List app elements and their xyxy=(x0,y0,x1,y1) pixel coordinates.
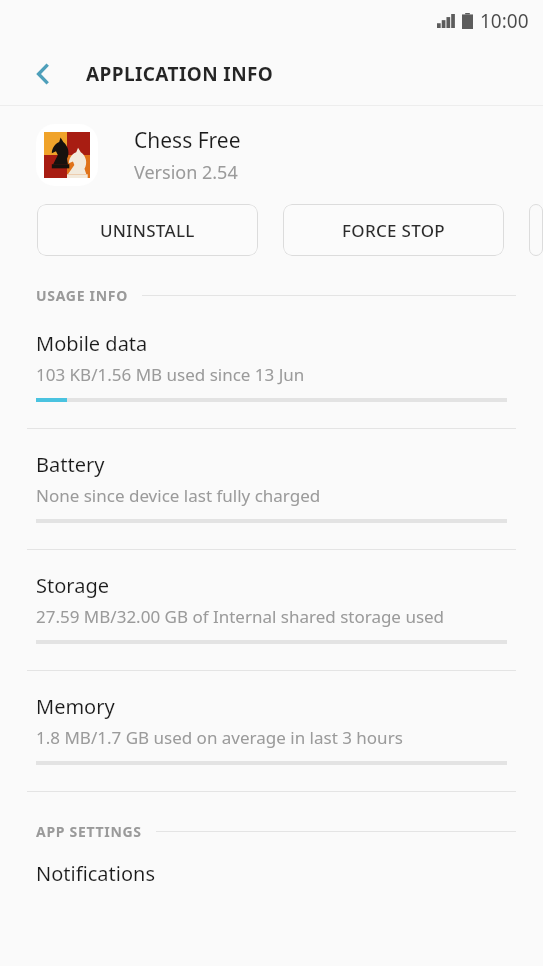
staticText: Memory xyxy=(36,693,115,720)
staticText: 103 KB/1.56 MB used since 13 Jun xyxy=(36,363,305,386)
button[interactable]: FORCE STOP xyxy=(283,204,504,256)
staticText: APP SETTINGS xyxy=(36,822,142,841)
staticText: Storage xyxy=(36,572,109,599)
staticText: UNINSTALL xyxy=(100,219,195,242)
button[interactable]: Back xyxy=(22,53,64,95)
staticText: Notifications xyxy=(36,860,155,887)
staticText: Chess Free xyxy=(134,126,241,155)
staticText: 1.8 MB/1.7 GB used on average in last 3 … xyxy=(36,726,403,749)
button[interactable]: Mobile data xyxy=(0,308,543,429)
staticText: FORCE STOP xyxy=(342,219,445,242)
staticText: Mobile data xyxy=(36,330,148,357)
staticText: Battery xyxy=(36,451,105,478)
staticText: 10:00 xyxy=(480,8,529,34)
button[interactable]: Notifications xyxy=(0,844,543,902)
staticText: USAGE INFO xyxy=(36,286,128,305)
button[interactable] xyxy=(529,204,543,256)
staticText: Version 2.54 xyxy=(134,160,238,185)
button[interactable]: Storage xyxy=(0,550,543,671)
staticText: 27.59 MB/32.00 GB of Internal shared sto… xyxy=(36,605,445,628)
button[interactable]: Memory xyxy=(0,671,543,792)
button[interactable]: Battery xyxy=(0,429,543,550)
button[interactable]: UNINSTALL xyxy=(37,204,258,256)
staticText: None since device last fully charged xyxy=(36,484,321,507)
staticText: APPLICATION INFO xyxy=(86,61,274,87)
